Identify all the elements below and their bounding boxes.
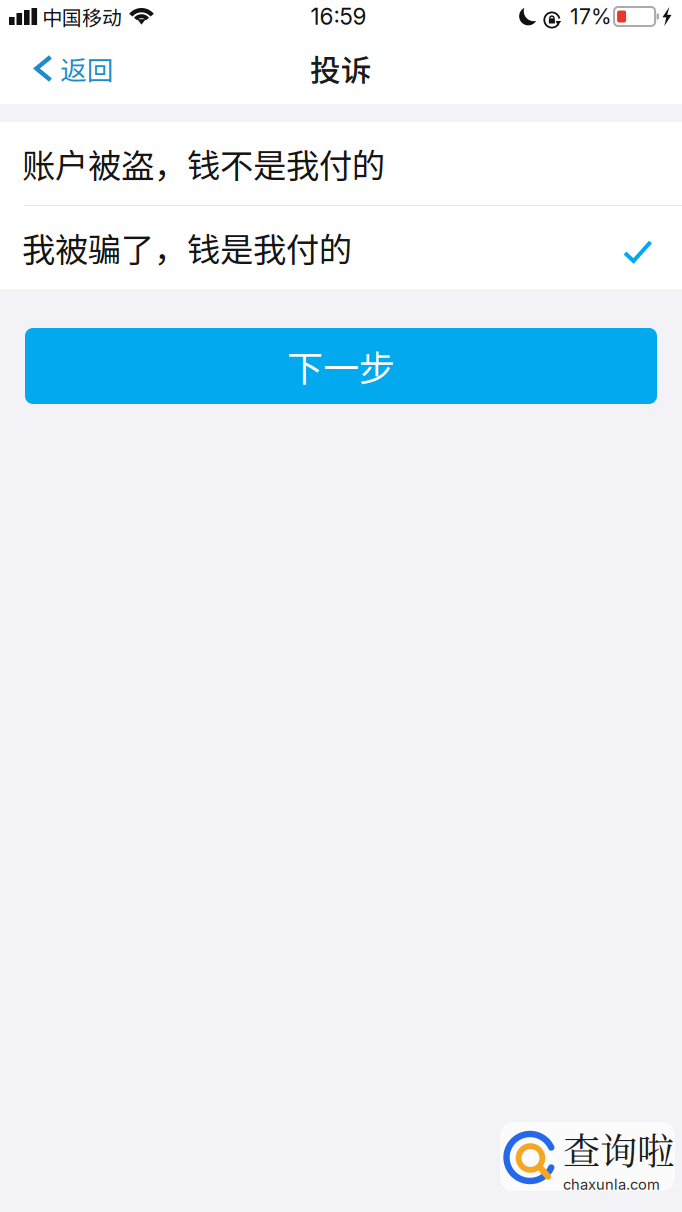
staticText: 我被骗了，钱是我付的 — [22, 223, 352, 272]
staticText: 账户被盗，钱不是我付的 — [22, 139, 385, 188]
button[interactable]: 返回 — [0, 41, 128, 96]
button[interactable]: 账户被盗，钱不是我付的 — [0, 122, 682, 205]
staticText: 投诉 — [310, 46, 372, 91]
staticText: 中国移动 — [42, 2, 122, 31]
staticText: 17% — [570, 4, 612, 29]
staticText: 16:59 — [311, 3, 367, 30]
staticText: 查询啦 — [563, 1122, 674, 1175]
button[interactable]: 下一步 — [25, 328, 657, 404]
staticText: 下一步 — [287, 340, 395, 392]
button[interactable]: 我被骗了，钱是我付的 — [0, 206, 682, 289]
staticText: chaxunla.com — [563, 1175, 660, 1193]
staticText: 返回 — [60, 49, 114, 88]
